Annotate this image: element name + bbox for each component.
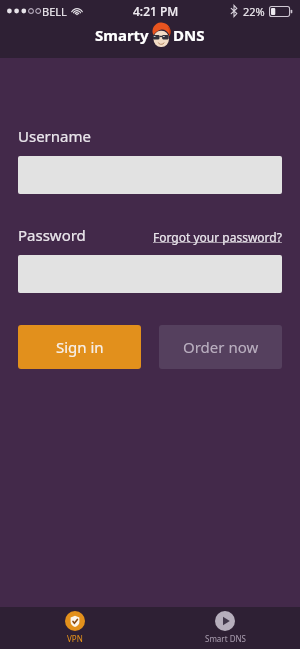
staticText: Password (18, 225, 86, 245)
staticText: Smart DNS (205, 633, 246, 644)
staticText: Sign in (56, 337, 104, 357)
button[interactable]: Order now (159, 325, 282, 369)
staticText: VPN (67, 633, 83, 644)
staticText: BELL (42, 4, 67, 19)
button[interactable]: Forgot your password? (153, 229, 282, 245)
staticText: 4:21 PM (133, 3, 179, 19)
button[interactable]: VPN (0, 607, 150, 649)
staticText: DNS (173, 25, 205, 45)
button[interactable]: Smart DNS (150, 607, 300, 649)
staticText: Username (18, 126, 91, 146)
staticText: 22% (243, 4, 265, 19)
staticText: Forgot your password? (153, 229, 282, 245)
staticText: Smarty (95, 25, 149, 45)
staticText: Order now (183, 337, 259, 357)
button[interactable]: Sign in (18, 325, 141, 369)
